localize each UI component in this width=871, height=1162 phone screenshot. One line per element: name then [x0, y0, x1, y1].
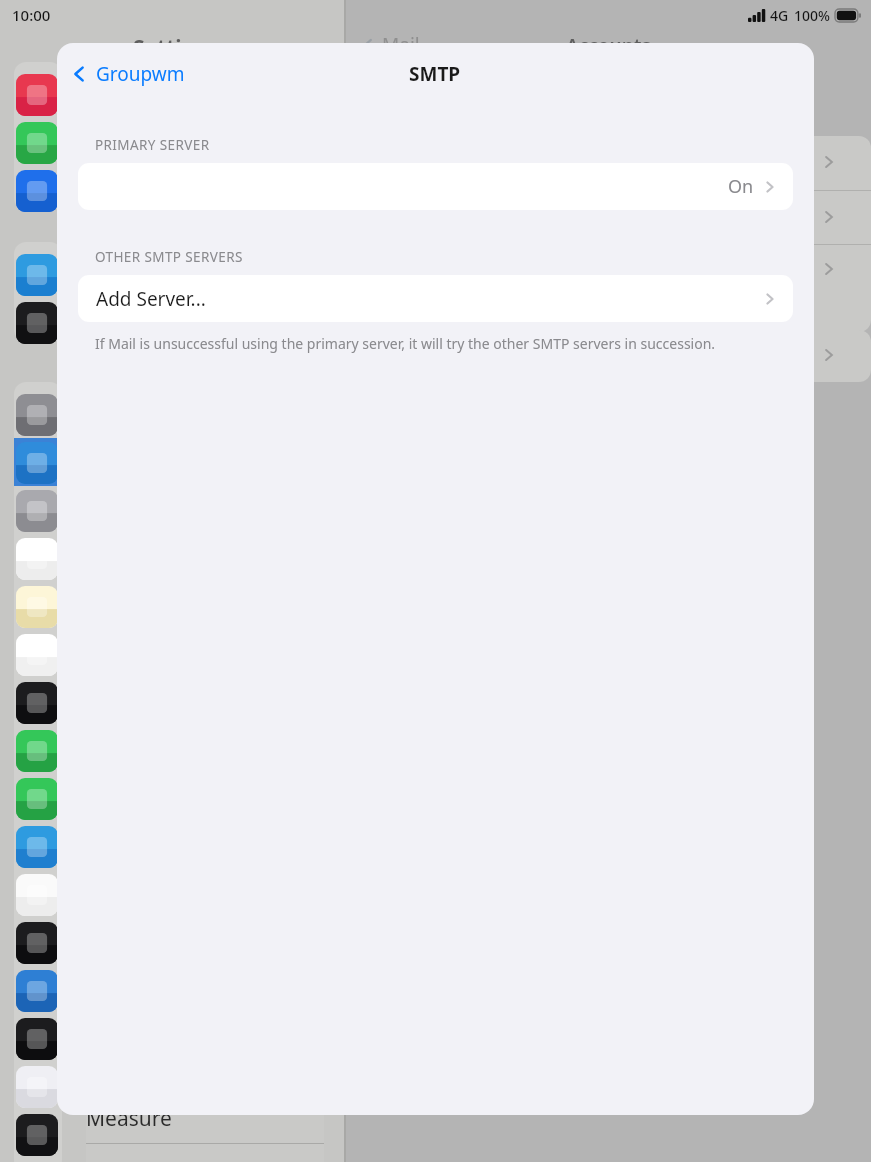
staticText: 4G: [770, 6, 789, 25]
staticText: OTHER SMTP SERVERS: [95, 248, 243, 266]
staticText: Add Server...: [96, 286, 206, 312]
staticText: Measure: [86, 1104, 172, 1133]
other: Open: [820, 208, 838, 226]
other: Open: [820, 260, 838, 278]
staticText: If Mail is unsuccessful using the primar…: [95, 334, 716, 353]
button[interactable]: On: [78, 163, 793, 210]
staticText: Groupwm: [96, 61, 185, 87]
other: Back: [69, 64, 89, 84]
staticText: 100%: [794, 6, 830, 25]
other: Open: [762, 291, 778, 307]
other: Open: [820, 346, 838, 364]
other: Open: [820, 153, 838, 171]
button[interactable]: Add Server...: [78, 275, 793, 322]
staticText: Mail: [382, 32, 420, 58]
other: Back: [360, 37, 376, 53]
staticText: 10:00: [12, 5, 51, 25]
staticText: SMTP: [409, 61, 461, 87]
staticText: Settings: [133, 33, 220, 62]
button[interactable]: Back: [57, 55, 197, 93]
staticText: PRIMARY SERVER: [95, 136, 210, 154]
staticText: Accounts: [566, 33, 651, 59]
other: Open: [762, 179, 778, 195]
staticText: On: [728, 174, 754, 199]
